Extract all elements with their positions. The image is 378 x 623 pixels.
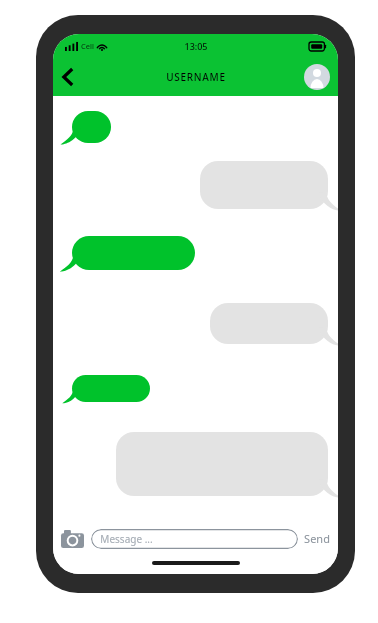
staticText: Send: [304, 531, 330, 546]
button[interactable]: Sent message: [65, 375, 150, 404]
staticText: USERNAME: [166, 70, 226, 84]
staticText: 13:05: [184, 40, 208, 52]
button[interactable]: Received message: [116, 432, 335, 498]
button[interactable]: Camera: [60, 528, 85, 549]
button[interactable]: Sent message: [65, 111, 111, 145]
button[interactable]: Sent message: [65, 236, 195, 272]
button[interactable]: Back: [53, 62, 83, 92]
button[interactable]: Message ...: [91, 529, 298, 549]
button[interactable]: Profile: [304, 64, 330, 90]
button[interactable]: Send: [303, 528, 331, 549]
button[interactable]: Received message: [200, 161, 335, 211]
staticText: Cell: [81, 41, 94, 51]
button[interactable]: Received message: [210, 303, 335, 346]
staticText: Message ...: [100, 532, 153, 546]
